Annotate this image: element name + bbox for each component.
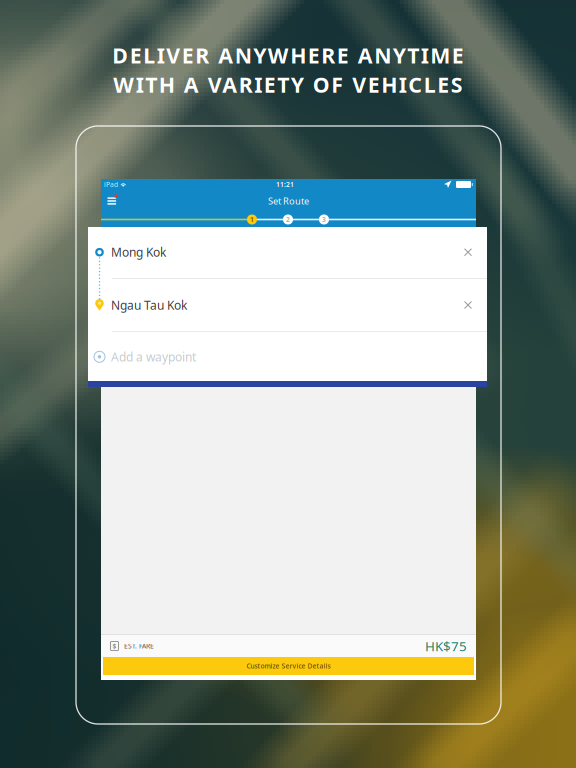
staticText: iPad: [104, 180, 118, 189]
staticText: $: [112, 642, 116, 650]
staticText: Ngau Tau Kok: [111, 297, 187, 313]
staticText: DELIVER ANYWHERE ANYTIME: [112, 41, 464, 69]
button[interactable]: Add a waypoint: [88, 332, 487, 382]
button[interactable]: Menu: [107, 196, 119, 206]
staticText: 3: [322, 215, 326, 224]
staticText: EST. FARE: [124, 642, 154, 650]
staticText: Customize Service Details: [246, 662, 330, 670]
button[interactable]: Mong Kok: [88, 226, 487, 278]
staticText: 1: [250, 215, 254, 224]
button[interactable]: Customize Service Details: [103, 657, 474, 675]
staticText: WITH A VARIETY OF VEHICLES: [113, 70, 463, 99]
staticText: Set Route: [268, 195, 309, 207]
staticText: HK$75: [425, 637, 467, 655]
staticText: Mong Kok: [111, 244, 166, 260]
staticText: 2: [286, 215, 290, 224]
staticText: Add a waypoint: [111, 349, 196, 365]
staticText: 11:21: [276, 180, 294, 189]
button[interactable]: Ngau Tau Kok: [88, 279, 487, 331]
